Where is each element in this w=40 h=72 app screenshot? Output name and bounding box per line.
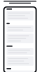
button[interactable] <box>6 25 33 32</box>
button[interactable] <box>6 56 33 66</box>
button[interactable] <box>6 70 33 72</box>
button[interactable] <box>6 34 33 43</box>
button[interactable] <box>6 48 33 55</box>
button[interactable] <box>6 11 33 20</box>
